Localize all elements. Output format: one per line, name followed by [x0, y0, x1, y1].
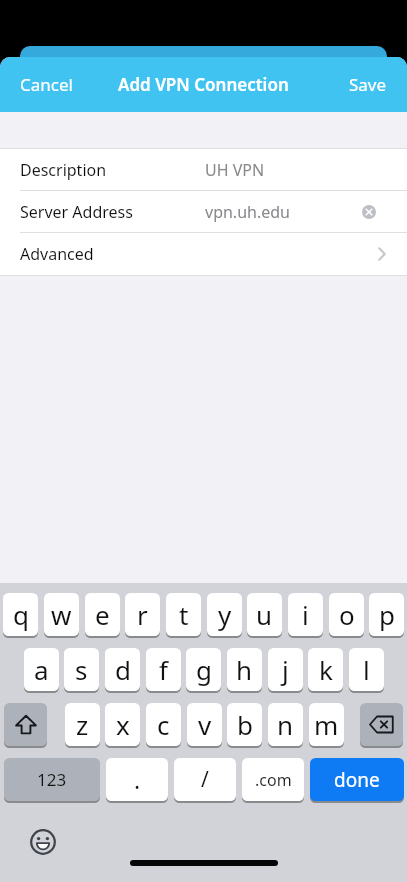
staticText: g	[196, 652, 212, 687]
staticText: l	[363, 652, 370, 687]
button[interactable]: w	[44, 593, 79, 636]
staticText: 123	[37, 768, 67, 791]
staticText: o	[339, 597, 355, 632]
button[interactable]: .com	[242, 758, 304, 801]
staticText: /	[201, 765, 209, 794]
staticText: Add VPN Connection	[118, 73, 289, 96]
staticText: v	[198, 707, 212, 742]
button[interactable]: o	[329, 593, 364, 636]
button[interactable]: x	[105, 703, 140, 746]
button[interactable]: a	[24, 648, 59, 691]
button[interactable]	[360, 703, 403, 746]
staticText: .	[134, 764, 141, 795]
staticText: s	[75, 652, 88, 687]
staticText: Cancel	[20, 73, 73, 96]
staticText: j	[282, 652, 289, 687]
button[interactable]: l	[349, 648, 384, 691]
staticText: done	[334, 767, 380, 793]
staticText: e	[95, 597, 110, 632]
button[interactable]: z	[65, 703, 100, 746]
staticText: f	[159, 652, 168, 687]
button[interactable]: j	[268, 648, 303, 691]
staticText: UH VPN	[205, 159, 265, 181]
staticText: Description	[20, 159, 107, 181]
staticText: Save	[349, 73, 387, 96]
staticText: .com	[255, 769, 292, 791]
button[interactable]: m	[309, 703, 344, 746]
button[interactable]: p	[369, 593, 404, 636]
button[interactable]: 123	[4, 758, 100, 801]
staticText: q	[13, 597, 29, 632]
staticText: k	[319, 652, 333, 687]
staticText: Server Address	[20, 201, 133, 223]
button[interactable]: .	[106, 758, 168, 801]
button[interactable]: b	[227, 703, 262, 746]
staticText: Advanced	[20, 243, 94, 265]
button[interactable]	[4, 703, 47, 746]
staticText: m	[314, 707, 339, 742]
button[interactable]: g	[186, 648, 221, 691]
button[interactable]: Advanced	[0, 233, 407, 275]
button[interactable]: u	[247, 593, 282, 636]
staticText: c	[157, 707, 170, 742]
staticText: r	[137, 597, 148, 632]
button[interactable]: f	[146, 648, 181, 691]
staticText: vpn.uh.edu	[205, 201, 290, 223]
button[interactable]: Cancel	[20, 73, 73, 96]
staticText: p	[379, 597, 395, 632]
button[interactable]: i	[288, 593, 323, 636]
button[interactable]: Description	[0, 149, 407, 190]
staticText: z	[76, 707, 89, 742]
button[interactable]: q	[3, 593, 38, 636]
button[interactable]: d	[105, 648, 140, 691]
staticText: a	[34, 652, 49, 687]
button[interactable]: s	[64, 648, 99, 691]
staticText: i	[302, 597, 309, 632]
button[interactable]: e	[85, 593, 120, 636]
button[interactable]: Save	[349, 73, 387, 96]
button[interactable]: h	[227, 648, 262, 691]
staticText: d	[115, 652, 131, 687]
button[interactable]: t	[166, 593, 201, 636]
button[interactable]	[29, 828, 57, 856]
button[interactable]: v	[187, 703, 222, 746]
staticText: b	[237, 707, 253, 742]
staticText: t	[179, 597, 189, 632]
staticText: u	[256, 597, 273, 632]
staticText: x	[116, 707, 130, 742]
button[interactable]: Server Address	[0, 191, 407, 232]
button[interactable]: done	[310, 758, 404, 801]
staticText: w	[51, 597, 72, 632]
button[interactable]: y	[207, 593, 242, 636]
staticText: y	[218, 597, 232, 632]
staticText: h	[236, 652, 253, 687]
button[interactable]: r	[125, 593, 160, 636]
button[interactable]: k	[308, 648, 343, 691]
button[interactable]: c	[146, 703, 181, 746]
button[interactable]: n	[268, 703, 303, 746]
button[interactable]: /	[174, 758, 236, 801]
staticText: n	[277, 707, 294, 742]
